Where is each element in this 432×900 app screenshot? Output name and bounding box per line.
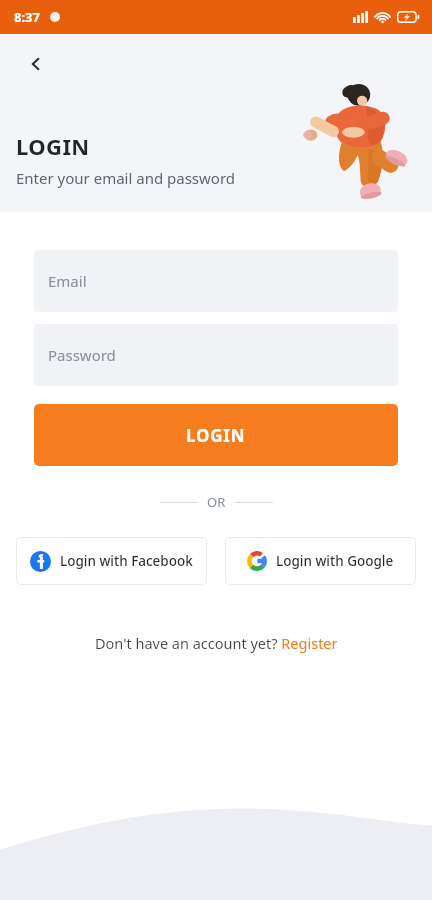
button[interactable]: LOGIN [34,404,398,466]
button[interactable]: Login with Google [225,537,416,585]
button[interactable]: Password [34,324,398,386]
staticText: Login with Facebook [60,552,193,570]
staticText: Password [48,345,116,365]
staticText: LOGIN [186,424,246,447]
button[interactable]: Login with Facebook [16,537,207,585]
staticText: Email [48,271,87,291]
staticText: Enter your email and password [16,168,236,188]
staticText: Don't have an account yet? Register [95,633,338,653]
button[interactable]: Don't have an account yet? Register [89,629,344,657]
staticText: OR [207,493,226,511]
staticText: 8:37 [14,8,40,26]
button[interactable]: Back [14,42,58,86]
staticText: LOGIN [16,131,90,161]
staticText: Login with Google [276,552,394,570]
button[interactable]: Email [34,250,398,312]
